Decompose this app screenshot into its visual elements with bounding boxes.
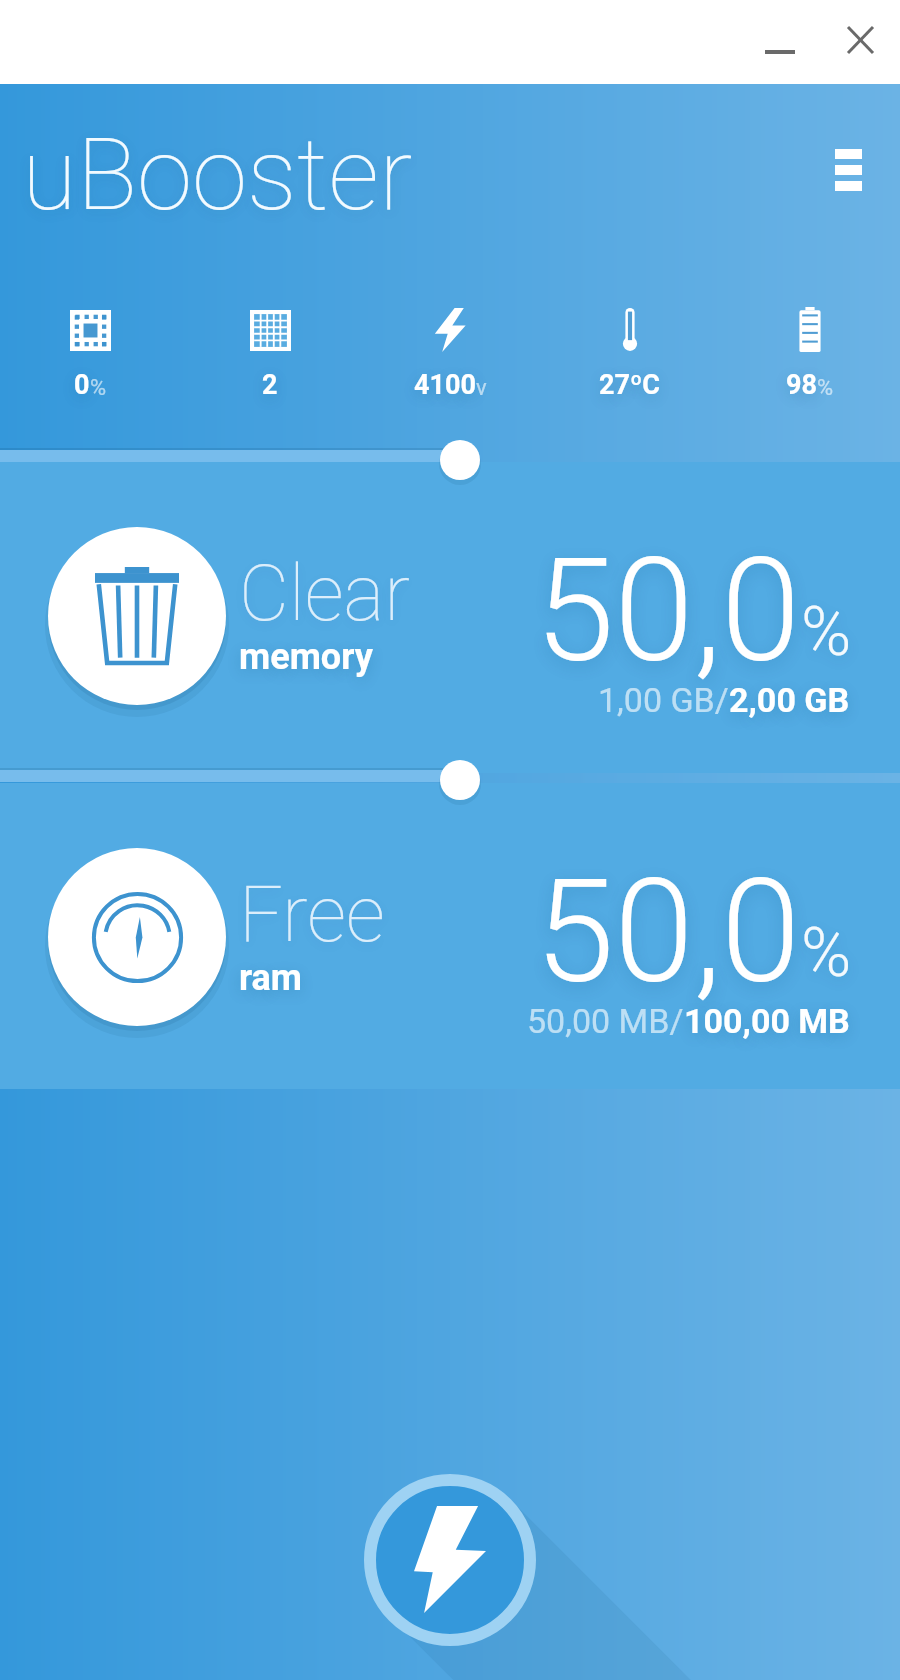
staticText: 27ºC [599, 369, 661, 401]
staticText: % [801, 913, 852, 993]
button[interactable]: 0 [0, 305, 180, 401]
button[interactable]: 98 [720, 305, 900, 401]
staticText: ram [239, 957, 303, 999]
button[interactable]: 4100 [360, 305, 540, 401]
button[interactable] [440, 760, 480, 800]
button[interactable]: 2 [180, 305, 360, 401]
staticText: v [476, 375, 487, 401]
staticText: 1,00 GB/ [598, 680, 729, 720]
button[interactable] [440, 440, 480, 480]
staticText: 4100 [414, 369, 476, 401]
staticText: 98 [786, 369, 817, 401]
staticText: 50,00 MB/ [527, 1001, 684, 1041]
staticText: 100,00 MB [684, 1001, 850, 1041]
staticText: 50,0 [535, 848, 801, 1016]
staticText: uBooster [22, 116, 413, 233]
staticText: 2,00 GB [729, 680, 850, 720]
staticText: Clear [239, 549, 410, 639]
staticText: 0 [74, 369, 90, 401]
button[interactable]: Free [0, 848, 900, 1078]
staticText: % [817, 375, 834, 401]
staticText: 2 [262, 369, 278, 401]
button[interactable]: Minimize [748, 8, 812, 72]
button[interactable]: Menu [805, 127, 891, 213]
staticText: % [801, 592, 852, 672]
button[interactable]: Clear [0, 527, 900, 757]
staticText: % [90, 375, 107, 401]
staticText: 50,0 [535, 527, 801, 695]
button[interactable]: Boost [364, 1474, 536, 1646]
button[interactable]: Close [828, 8, 892, 72]
staticText: Free [239, 870, 385, 960]
button[interactable]: 27ºC [540, 305, 720, 401]
staticText: memory [239, 636, 373, 678]
